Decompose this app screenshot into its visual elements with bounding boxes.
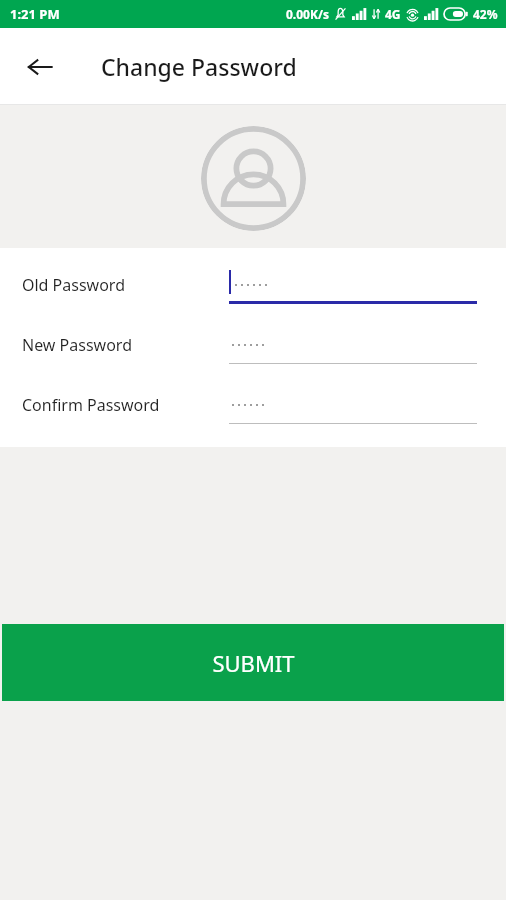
button[interactable]: New Password <box>0 326 506 364</box>
staticText: Change Password <box>101 51 297 82</box>
staticText: SUBMIT <box>212 648 295 678</box>
button[interactable]: Back <box>18 45 62 89</box>
button[interactable]: SUBMIT <box>2 624 504 701</box>
staticText: 0.00K/s <box>286 6 329 22</box>
staticText: Old Password <box>22 274 229 296</box>
staticText: Confirm Password <box>22 394 229 416</box>
button[interactable]: Profile photo <box>201 126 306 231</box>
staticText: New Password <box>22 334 229 356</box>
staticText: 1:21 PM <box>10 5 60 23</box>
staticText: 42% <box>473 6 498 22</box>
button[interactable]: Confirm Password <box>0 386 506 424</box>
button[interactable]: Old Password <box>0 266 506 304</box>
staticText: 4G <box>385 6 401 22</box>
